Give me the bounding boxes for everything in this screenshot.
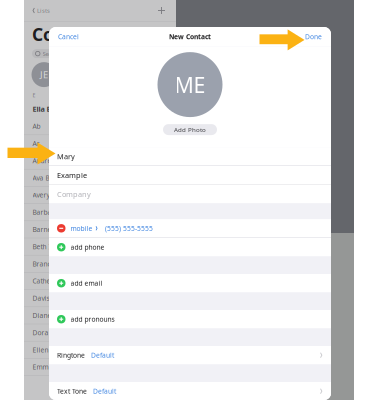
staticText: Cancel (58, 32, 79, 41)
staticText: mobile (70, 224, 92, 233)
staticText: (555) 555-5555 (105, 224, 153, 233)
staticText: Avery (32, 190, 49, 200)
staticText: Beth I (32, 242, 50, 251)
staticText: add phone (70, 243, 104, 252)
staticText: Branc (32, 259, 50, 268)
staticText: add email (70, 279, 102, 288)
button[interactable]: add pronouns (49, 310, 331, 328)
staticText: Text Tone (57, 387, 87, 396)
staticText: Diane (32, 311, 51, 320)
staticText: Ringtone (57, 351, 85, 360)
staticText: Add Photo (174, 125, 206, 134)
staticText: add pronouns (70, 315, 114, 324)
staticText: Emm (32, 362, 48, 372)
staticText: Ava B (32, 173, 49, 182)
staticText: Barne (32, 225, 51, 234)
staticText: JE (40, 68, 48, 81)
staticText: E (32, 92, 35, 99)
button[interactable]: add email (49, 274, 331, 292)
staticText: Ab (32, 122, 40, 131)
button[interactable]: Add Photo (163, 124, 217, 135)
staticText: Davis (32, 294, 49, 303)
staticText: Mary (57, 151, 75, 161)
staticText: Search (42, 50, 60, 58)
staticText: Cathe (32, 276, 50, 286)
staticText: New Contact (169, 32, 211, 41)
staticText: Ella E (32, 104, 50, 114)
staticText: Default (91, 351, 114, 360)
staticText: Ac (32, 139, 39, 148)
staticText: Contacts (32, 22, 109, 46)
button[interactable]: Text Tone (49, 382, 331, 400)
staticText: Ellen (32, 345, 48, 354)
button[interactable]: mobile (49, 219, 331, 237)
staticText: Dora (32, 328, 48, 337)
staticText: Done (305, 32, 322, 41)
staticText: Lists (37, 6, 50, 14)
staticText: Default (93, 387, 116, 396)
button[interactable]: Done (296, 28, 331, 46)
staticText: Andre (32, 156, 51, 165)
staticText: Example (57, 170, 87, 180)
staticText: ME (174, 70, 205, 99)
staticText: Barba (32, 208, 51, 217)
button[interactable]: Cancel (49, 28, 88, 46)
staticText: Company (57, 189, 91, 199)
button[interactable]: Ringtone (49, 346, 331, 364)
button[interactable]: add phone (49, 238, 331, 256)
